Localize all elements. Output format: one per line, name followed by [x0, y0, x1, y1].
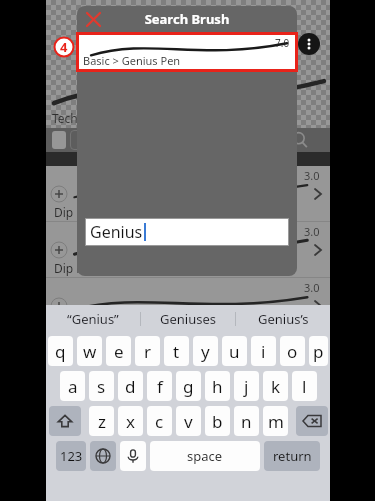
button[interactable]: k — [263, 371, 288, 401]
staticText: n — [241, 410, 252, 433]
button[interactable]: Geniuses — [141, 305, 235, 332]
button[interactable]: Genius — [85, 218, 289, 246]
button[interactable]: Add — [50, 297, 68, 315]
button[interactable]: h — [205, 371, 230, 401]
button[interactable]: More — [309, 185, 327, 203]
staticText: r — [144, 340, 152, 363]
button[interactable]: n — [234, 406, 259, 436]
button[interactable]: Add — [50, 353, 68, 371]
button[interactable]: 3.0 — [46, 278, 330, 334]
staticText: 3.0 — [304, 280, 320, 295]
staticText: l — [302, 375, 307, 398]
button[interactable]: r — [135, 336, 160, 366]
button[interactable]: j — [234, 371, 259, 401]
staticText: z — [98, 410, 106, 433]
button[interactable]: More options — [298, 33, 320, 55]
button[interactable]: 3.0 — [46, 166, 330, 222]
staticText: return — [273, 447, 312, 465]
staticText: Genius — [90, 221, 143, 243]
button[interactable]: g — [176, 371, 201, 401]
button[interactable]: c — [147, 406, 172, 436]
button[interactable]: b — [205, 406, 230, 436]
button[interactable]: q — [48, 336, 73, 366]
staticText: Dip Pen (Bleed) — [54, 316, 140, 332]
staticText: 123 — [60, 447, 83, 465]
button[interactable]: “Genius” — [46, 305, 140, 332]
staticText: t — [173, 340, 180, 363]
staticText: o — [287, 340, 298, 363]
staticText: f — [157, 375, 163, 398]
staticText: g — [183, 375, 194, 398]
staticText: c — [155, 410, 164, 433]
staticText: h — [212, 375, 223, 398]
button[interactable]: More — [309, 297, 327, 315]
button[interactable]: u — [222, 336, 247, 366]
button[interactable]: z — [89, 406, 114, 436]
button[interactable]: v — [176, 406, 201, 436]
staticText: x — [126, 410, 135, 433]
staticText: s — [97, 375, 106, 398]
staticText: “Genius” — [67, 310, 119, 328]
button[interactable]: p — [309, 336, 328, 366]
button[interactable]: o — [280, 336, 305, 366]
staticText: i — [261, 340, 266, 363]
button[interactable]: 3.0 — [46, 334, 330, 390]
button[interactable]: space — [150, 441, 260, 471]
button[interactable]: 7.0 — [76, 32, 298, 72]
staticText: space — [187, 447, 223, 465]
staticText: p — [313, 340, 324, 363]
button[interactable]: e — [106, 336, 131, 366]
staticText: b — [212, 410, 223, 433]
button[interactable]: Close — [83, 9, 103, 29]
staticText: Genius’s — [258, 310, 309, 328]
staticText: Basic > Genius Pen — [83, 53, 181, 68]
button[interactable]: 123 — [56, 441, 86, 471]
button[interactable]: Backspace — [296, 406, 328, 436]
button[interactable]: Add — [50, 241, 68, 259]
button[interactable]: return — [264, 441, 320, 471]
button[interactable]: Search — [291, 131, 309, 149]
button[interactable]: Globe — [90, 441, 116, 471]
staticText: 3.0 — [304, 168, 320, 183]
button[interactable]: l — [292, 371, 317, 401]
button[interactable]: 3.0 — [46, 222, 330, 278]
button[interactable]: w — [77, 336, 102, 366]
button[interactable]: t — [164, 336, 189, 366]
staticText: 3.0 — [304, 224, 320, 239]
staticText: Search Brush — [103, 10, 271, 28]
staticText: m — [268, 410, 284, 433]
button[interactable]: s — [89, 371, 114, 401]
staticText: k — [271, 375, 281, 398]
staticText: j — [244, 375, 249, 398]
button[interactable]: Microphone — [120, 441, 146, 471]
staticText: a — [68, 375, 78, 398]
staticText: w — [83, 340, 97, 363]
button[interactable]: i — [251, 336, 276, 366]
button[interactable]: d — [118, 371, 143, 401]
staticText: e — [114, 340, 124, 363]
button[interactable]: x — [118, 406, 143, 436]
button[interactable]: More — [309, 353, 327, 371]
staticText: Dip Pen (Hard) — [54, 260, 136, 276]
button[interactable]: m — [263, 406, 288, 436]
staticText: q — [55, 340, 66, 363]
staticText: 7.0 — [275, 36, 290, 50]
button[interactable]: Shift — [49, 406, 81, 436]
staticText: Felt Tip Pen (Soft) — [54, 372, 152, 388]
staticText: Technical Pen — [52, 110, 129, 126]
staticText: Dip Pen (Soft) — [54, 204, 131, 220]
button[interactable]: y — [193, 336, 218, 366]
button[interactable]: Genius’s — [236, 305, 330, 332]
button[interactable]: f — [147, 371, 172, 401]
button[interactable]: Add — [50, 185, 68, 203]
staticText: Geniuses — [160, 310, 217, 328]
staticText: 4 — [60, 38, 68, 56]
button[interactable]: a — [60, 371, 85, 401]
staticText: d — [125, 375, 136, 398]
button[interactable]: More — [309, 241, 327, 259]
